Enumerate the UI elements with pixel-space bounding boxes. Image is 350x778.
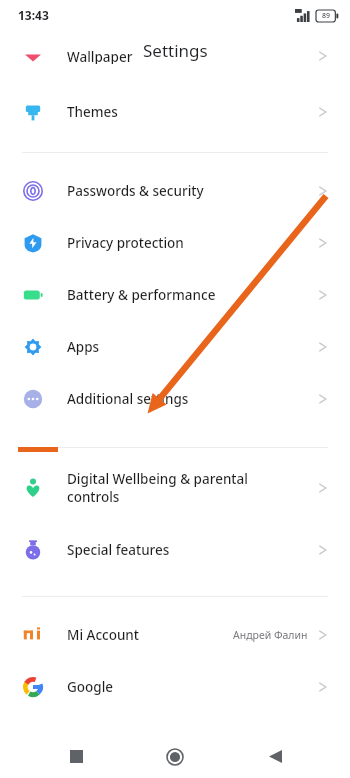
button[interactable]: Google: [0, 661, 350, 713]
staticText: Андрей Фалин: [233, 628, 308, 642]
staticText: Additional settings: [67, 390, 189, 408]
button[interactable]: Back: [251, 735, 299, 778]
staticText: Special features: [67, 541, 170, 559]
staticText: Google: [67, 678, 114, 696]
staticText: 89: [322, 11, 331, 21]
staticText: Digital Wellbeing & parental controls: [67, 470, 248, 506]
button[interactable]: Mi Account: [0, 609, 350, 661]
staticText: Apps: [67, 338, 100, 356]
staticText: Privacy protection: [67, 234, 184, 252]
button[interactable]: Battery & performance: [0, 269, 350, 321]
staticText: Passwords & security: [67, 182, 204, 200]
staticText: 13:43: [18, 7, 49, 23]
button[interactable]: Digital Wellbeing & parental controls: [0, 462, 350, 524]
staticText: Themes: [67, 103, 118, 121]
staticText: Settings: [143, 39, 208, 62]
button[interactable]: Themes: [0, 86, 350, 138]
button[interactable]: Apps: [0, 321, 350, 373]
button[interactable]: Recents: [52, 735, 100, 778]
button[interactable]: Additional settings: [0, 373, 350, 425]
staticText: Battery & performance: [67, 286, 216, 304]
staticText: Wallpaper: [67, 48, 133, 64]
button[interactable]: Special features: [0, 524, 350, 576]
button[interactable]: Privacy protection: [0, 217, 350, 269]
button[interactable]: Home: [151, 735, 199, 778]
staticText: Mi Account: [67, 626, 139, 644]
button[interactable]: Passwords & security: [0, 165, 350, 217]
